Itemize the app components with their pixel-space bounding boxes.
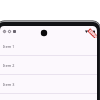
staticText: Item 3 xyxy=(3,82,15,87)
button[interactable]: Item 2 xyxy=(0,56,97,75)
staticText: Item 1 xyxy=(3,44,15,49)
button[interactable]: Item 3 xyxy=(0,75,97,94)
staticText: Item 2 xyxy=(3,63,15,68)
staticText: DEBUG xyxy=(88,29,97,38)
button[interactable]: Item 1 xyxy=(0,37,97,56)
